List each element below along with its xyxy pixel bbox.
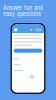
button[interactable]: Toggle [27,75,34,78]
button[interactable] [12,46,44,56]
staticText: Answer fun and [3,4,43,11]
staticText: easy questions [3,11,41,17]
